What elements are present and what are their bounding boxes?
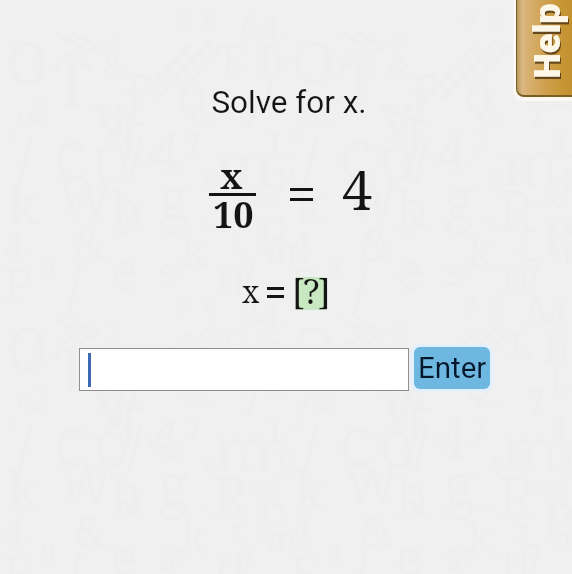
- staticText: 7: [526, 90, 547, 139]
- staticText: Enter: [418, 351, 487, 386]
- button[interactable]: Enter: [414, 347, 490, 389]
- staticText: C: [340, 124, 372, 195]
- staticText: >: [354, 288, 390, 375]
- staticText: =: [488, 384, 504, 422]
- staticText: /: [461, 303, 523, 394]
- staticText: E: [276, 158, 296, 202]
- staticText: >: [68, 288, 104, 375]
- staticText: 2: [316, 376, 334, 420]
- staticText: [?]: [292, 267, 329, 315]
- button[interactable]: Answer input: [79, 348, 409, 391]
- button[interactable]: Help: [517, 0, 572, 95]
- staticText: L: [262, 350, 287, 404]
- staticText: y: [378, 356, 415, 443]
- staticText: O: [292, 308, 336, 387]
- staticText: 7: [240, 90, 261, 139]
- staticText: Q: [178, 358, 207, 410]
- staticText: 4: [544, 0, 569, 60]
- staticText: A: [238, 286, 262, 332]
- staticText: x: [230, 226, 244, 259]
- staticText: 4: [258, 286, 283, 346]
- staticText: =: [202, 98, 218, 136]
- staticText: E: [222, 318, 246, 370]
- staticText: x: [220, 152, 243, 200]
- staticText: L: [262, 64, 287, 118]
- staticText: O: [292, 22, 336, 101]
- staticText: m: [214, 120, 273, 204]
